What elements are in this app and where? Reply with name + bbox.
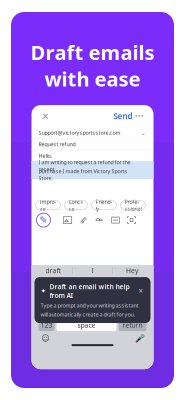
button[interactable]: Dictate [133,333,145,343]
staticText: Draft emails [30,39,154,66]
staticText: X [66,306,71,316]
button[interactable]: C [75,305,85,317]
button[interactable]: ⌫ [135,305,149,317]
button[interactable]: B [99,305,109,317]
button[interactable] [122,277,132,289]
button[interactable]: Attach [75,213,91,227]
staticText: × [42,108,49,124]
staticText: 123 [40,321,52,330]
button[interactable]: 123 [38,319,54,331]
button[interactable]: Close [38,109,52,123]
button[interactable]: Attach [91,213,107,227]
button[interactable] [92,277,102,289]
staticText: ✦ [40,287,46,295]
staticText: Hey [126,266,138,275]
button[interactable]: Concise [64,201,87,210]
button[interactable]: More options [132,110,146,122]
staticText: draft [45,266,60,275]
staticText: will automatically create a draft for yo… [40,311,134,318]
staticText: I am writing to request a refund for the… [38,158,130,173]
staticText: Z [54,306,59,316]
button[interactable] [57,291,67,303]
button[interactable]: Improve [35,201,60,210]
staticText: ••• [135,112,144,121]
button[interactable] [132,277,142,289]
staticText: Request refund [38,141,75,148]
staticText: V [90,306,95,316]
button[interactable]: Attach [107,213,123,227]
button[interactable]: space [56,319,116,331]
staticText: B [102,306,107,316]
staticText: return [122,321,142,330]
button[interactable] [102,277,112,289]
button[interactable] [72,277,82,289]
staticText: M [125,306,132,316]
button[interactable]: Friendly [91,201,116,210]
staticText: N [113,306,119,316]
staticText: Type a prompt and your writing assistant [40,302,138,309]
button[interactable]: X [63,305,73,317]
staticText: Concise [68,198,83,212]
staticText: with ease [44,66,140,92]
button[interactable]: Send [113,111,132,121]
button[interactable] [52,277,62,289]
staticText: Draft an email with help from AI [49,282,129,300]
button[interactable] [42,277,52,289]
staticText: Professional [124,198,141,212]
button[interactable]: Hey [112,266,151,275]
staticText: Hello, [38,152,51,159]
staticText: I [91,266,93,275]
staticText: ✎ [39,215,47,225]
button[interactable]: V [87,305,97,317]
staticText: ⬦ [39,307,45,315]
button[interactable]: M [123,305,133,317]
staticText: ☺ [41,334,49,343]
staticText: 🎤 [134,333,144,343]
button[interactable]: I [73,266,112,275]
staticText: ⌫ [137,307,148,316]
button[interactable]: draft [33,266,72,275]
staticText: space [77,321,95,330]
button[interactable] [62,277,72,289]
staticText: ⌄ [140,129,146,136]
button[interactable]: N [111,305,121,317]
button[interactable]: Attach [59,213,75,227]
button[interactable]: ⬦ [35,305,49,317]
staticText: Improve [39,198,56,212]
button[interactable]: Attach [123,213,139,227]
staticText: purchase I made from Victory Sports Stor… [38,167,127,182]
staticText: × [138,286,143,296]
staticText: Support@victorysportsstore.com [38,129,120,136]
button[interactable] [47,291,57,303]
button[interactable]: Professional [120,201,145,210]
staticText: Send [113,111,132,121]
button[interactable]: Emoji [39,333,51,343]
button[interactable]: Write with AI [36,213,50,227]
staticText: C [78,306,83,316]
button[interactable] [112,277,122,289]
button[interactable] [82,277,92,289]
button[interactable]: Z [51,305,61,317]
button[interactable]: return [118,319,146,331]
button[interactable]: Dismiss tip [137,287,144,294]
staticText: Friendly [95,198,112,212]
button[interactable] [67,291,77,303]
